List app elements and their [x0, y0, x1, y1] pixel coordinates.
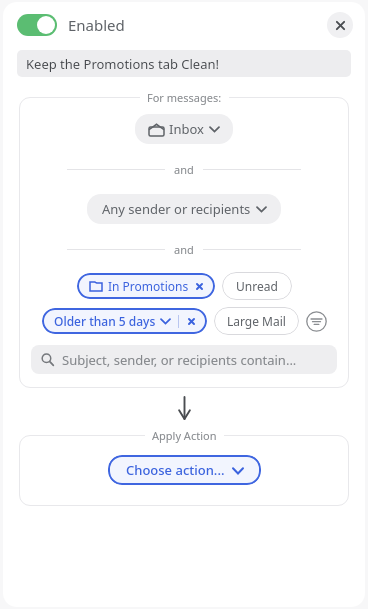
button[interactable]: Keep the Promotions tab Clean!: [17, 50, 351, 77]
button[interactable]: In Promotions: [77, 273, 215, 299]
staticText: Large Mail: [227, 313, 286, 329]
button[interactable]: Subject, sender, or recipients contain..…: [31, 345, 337, 374]
staticText: Older than 5 days: [54, 313, 156, 329]
staticText: Apply Action: [152, 428, 217, 443]
staticText: Inbox: [169, 120, 204, 138]
staticText: Subject, sender, or recipients contain..…: [62, 351, 297, 369]
staticText: and: [174, 162, 194, 177]
staticText: Unread: [236, 278, 278, 294]
staticText: Enabled: [68, 15, 125, 35]
button[interactable]: More filters: [306, 311, 327, 332]
staticText: Any sender or recipients: [102, 200, 251, 218]
staticText: Keep the Promotions tab Clean!: [26, 55, 220, 73]
staticText: In Promotions: [108, 278, 189, 294]
staticText: Choose action...: [126, 461, 225, 479]
button[interactable]: Inbox: [135, 114, 233, 144]
button[interactable]: Any sender or recipients: [87, 194, 281, 224]
button[interactable]: Unread: [222, 272, 292, 300]
staticText: and: [174, 242, 194, 257]
button[interactable]: Large Mail: [214, 307, 299, 335]
button[interactable]: Choose action...: [108, 455, 261, 485]
button[interactable]: Close: [327, 12, 353, 38]
staticText: For messages:: [147, 90, 222, 105]
button[interactable]: Enabled toggle: [17, 14, 57, 36]
button[interactable]: Older than 5 days: [42, 308, 207, 334]
